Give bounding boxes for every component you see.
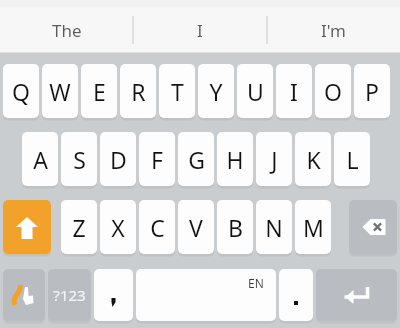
button[interactable]: N (256, 200, 292, 254)
button[interactable]: T (159, 64, 195, 118)
staticText: X (111, 212, 125, 243)
staticText: ?123 (53, 285, 86, 305)
button[interactable]: J (256, 132, 292, 186)
button[interactable]: R (120, 64, 156, 118)
staticText: The (52, 19, 82, 42)
staticText: V (189, 212, 203, 243)
staticText: E (93, 76, 106, 107)
staticText: A (33, 144, 48, 175)
button[interactable]: Q (3, 64, 39, 118)
button[interactable]: E (81, 64, 117, 118)
staticText: D (110, 144, 127, 175)
button[interactable]: Backspace (349, 200, 397, 254)
button[interactable]: The (0, 7, 133, 53)
staticText: I'm (321, 19, 346, 42)
button[interactable]: U (237, 64, 273, 118)
button[interactable]: ?123 (48, 269, 91, 321)
button[interactable]: M (295, 200, 331, 254)
button[interactable]: Comma (94, 269, 133, 321)
button[interactable]: Gesture typing (3, 269, 45, 321)
button[interactable]: Period (279, 269, 313, 321)
staticText: F (151, 144, 163, 175)
staticText: K (306, 144, 321, 175)
button[interactable]: Enter (316, 269, 397, 321)
button[interactable]: W (42, 64, 78, 118)
staticText: B (228, 212, 243, 243)
staticText: P (365, 76, 379, 107)
staticText: Y (209, 76, 223, 107)
staticText: S (73, 144, 86, 175)
button[interactable]: D (100, 132, 136, 186)
staticText: I (197, 19, 203, 42)
staticText: R (131, 76, 146, 107)
staticText: H (226, 144, 244, 175)
button[interactable]: O (315, 64, 351, 118)
button[interactable]: H (217, 132, 253, 186)
button[interactable]: I'm (267, 7, 400, 53)
button[interactable]: I (276, 64, 312, 118)
staticText: C (150, 212, 165, 243)
staticText: Q (12, 76, 30, 107)
staticText: W (49, 76, 71, 107)
button[interactable]: Space (136, 269, 276, 321)
button[interactable]: I (133, 7, 267, 53)
button[interactable]: P (354, 64, 390, 118)
button[interactable]: S (61, 132, 97, 186)
staticText: Z (72, 212, 86, 243)
button[interactable]: V (178, 200, 214, 254)
staticText: T (171, 76, 184, 107)
button[interactable]: L (334, 132, 370, 186)
button[interactable]: C (139, 200, 175, 254)
staticText: I (290, 76, 298, 107)
staticText: O (324, 76, 342, 107)
staticText: J (271, 144, 278, 175)
button[interactable]: G (178, 132, 214, 186)
staticText: N (265, 212, 283, 243)
button[interactable]: F (139, 132, 175, 186)
button[interactable]: Y (198, 64, 234, 118)
button[interactable]: Z (61, 200, 97, 254)
button[interactable]: X (100, 200, 136, 254)
button[interactable]: B (217, 200, 253, 254)
staticText: M (303, 212, 324, 243)
staticText: G (188, 144, 205, 175)
staticText: U (247, 76, 264, 107)
button[interactable]: K (295, 132, 331, 186)
staticText: L (346, 144, 359, 175)
button[interactable]: A (22, 132, 58, 186)
button[interactable]: Shift (3, 200, 51, 254)
staticText: EN (248, 275, 264, 291)
